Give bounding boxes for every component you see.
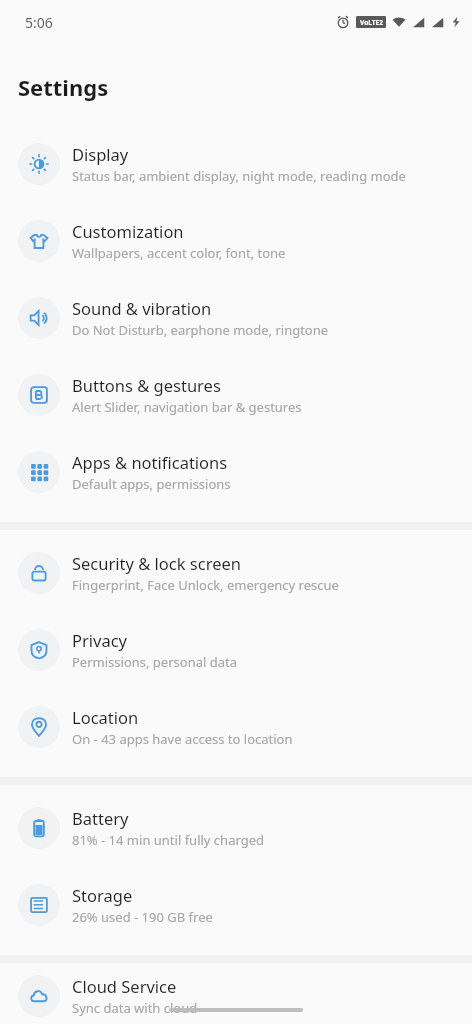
- staticText: 81% - 14 min until fully charged: [72, 831, 264, 849]
- button[interactable]: Customization: [0, 202, 472, 279]
- button[interactable]: Location: [0, 688, 472, 765]
- staticText: Storage: [72, 884, 133, 906]
- staticText: Wallpapers, accent color, font, tone: [72, 244, 286, 262]
- staticText: Default apps, permissions: [72, 475, 231, 493]
- staticText: Battery: [72, 807, 129, 829]
- button[interactable]: Privacy: [0, 611, 472, 688]
- staticText: Buttons & gestures: [72, 374, 221, 396]
- staticText: Display: [72, 143, 129, 165]
- button[interactable]: Security & lock screen: [0, 534, 472, 611]
- button[interactable]: Storage: [0, 866, 472, 943]
- button[interactable]: Apps & notifications: [0, 433, 472, 510]
- button[interactable]: Battery: [0, 789, 472, 866]
- staticText: 5:06: [25, 13, 53, 32]
- staticText: Permissions, personal data: [72, 653, 237, 671]
- staticText: Cloud Service: [72, 975, 177, 997]
- staticText: Fingerprint, Face Unlock, emergency resc…: [72, 576, 339, 594]
- staticText: Status bar, ambient display, night mode,…: [72, 167, 406, 185]
- staticText: VoLTE2: [360, 18, 383, 27]
- staticText: Security & lock screen: [72, 552, 241, 574]
- staticText: Sound & vibration: [72, 297, 212, 319]
- staticText: 26% used - 190 GB free: [72, 908, 213, 926]
- staticText: Settings: [18, 72, 109, 102]
- staticText: Do Not Disturb, earphone mode, ringtone: [72, 321, 329, 339]
- staticText: Sync data with cloud: [72, 999, 198, 1017]
- staticText: Alert Slider, navigation bar & gestures: [72, 398, 302, 416]
- staticText: Apps & notifications: [72, 451, 228, 473]
- staticText: Privacy: [72, 629, 128, 651]
- button[interactable]: Sound & vibration: [0, 279, 472, 356]
- button[interactable]: Buttons & gestures: [0, 356, 472, 433]
- staticText: On - 43 apps have access to location: [72, 730, 293, 748]
- staticText: Customization: [72, 220, 184, 242]
- button[interactable]: Display: [0, 125, 472, 202]
- button[interactable]: Cloud Service: [0, 967, 472, 1024]
- staticText: Location: [72, 706, 139, 728]
